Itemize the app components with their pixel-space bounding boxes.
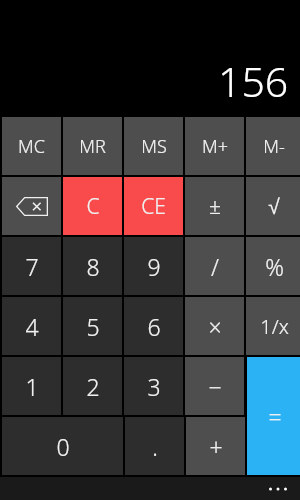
staticText: / bbox=[211, 251, 219, 282]
staticText: × bbox=[208, 311, 222, 342]
button[interactable]: 1 bbox=[2, 357, 61, 415]
button[interactable]: / bbox=[185, 237, 244, 295]
button[interactable]: + bbox=[186, 417, 245, 475]
staticText: 8 bbox=[86, 251, 100, 282]
button[interactable]: 2 bbox=[63, 357, 122, 415]
staticText: MS bbox=[141, 134, 167, 159]
button[interactable]: − bbox=[185, 357, 244, 415]
staticText: . bbox=[152, 431, 158, 462]
staticText: 3 bbox=[147, 371, 161, 402]
button[interactable]: More options bbox=[0, 477, 300, 500]
staticText: % bbox=[265, 251, 284, 282]
staticText: 0 bbox=[56, 431, 70, 462]
staticText: MC bbox=[18, 134, 45, 159]
button[interactable]: MR bbox=[63, 117, 122, 175]
button[interactable]: M+ bbox=[185, 117, 244, 175]
staticText: 6 bbox=[147, 311, 161, 342]
button[interactable]: MS bbox=[124, 117, 183, 175]
button[interactable]: 4 bbox=[2, 297, 61, 355]
button[interactable]: Backspace bbox=[2, 177, 61, 235]
button[interactable]: 1/x bbox=[246, 297, 300, 355]
staticText: = bbox=[268, 401, 282, 432]
button[interactable]: × bbox=[185, 297, 244, 355]
button[interactable]: 5 bbox=[63, 297, 122, 355]
button[interactable]: ± bbox=[185, 177, 244, 235]
staticText: 9 bbox=[147, 251, 161, 282]
button[interactable]: = bbox=[247, 357, 300, 475]
staticText: 5 bbox=[86, 311, 100, 342]
staticText: 2 bbox=[86, 371, 100, 402]
button[interactable]: √ bbox=[246, 177, 300, 235]
staticText: √ bbox=[268, 195, 280, 218]
button[interactable]: C bbox=[63, 177, 122, 235]
button[interactable]: M- bbox=[246, 117, 300, 175]
button[interactable]: 3 bbox=[124, 357, 183, 415]
button[interactable]: 0 bbox=[2, 417, 123, 475]
staticText: 4 bbox=[25, 311, 39, 342]
button[interactable]: . bbox=[125, 417, 184, 475]
staticText: 1/x bbox=[260, 313, 289, 340]
staticText: 7 bbox=[25, 251, 39, 282]
button[interactable]: MC bbox=[2, 117, 61, 175]
staticText: 1 bbox=[25, 371, 39, 402]
button[interactable]: % bbox=[246, 237, 300, 295]
button[interactable]: 6 bbox=[124, 297, 183, 355]
staticText: ± bbox=[209, 192, 221, 221]
staticText: M+ bbox=[202, 134, 228, 159]
staticText: C bbox=[86, 192, 100, 221]
button[interactable]: 7 bbox=[2, 237, 61, 295]
button[interactable]: 9 bbox=[124, 237, 183, 295]
staticText: CE bbox=[141, 192, 166, 221]
button[interactable]: CE bbox=[124, 177, 183, 235]
button[interactable]: 8 bbox=[63, 237, 122, 295]
staticText: M- bbox=[263, 134, 285, 159]
staticText: − bbox=[208, 371, 222, 402]
staticText: MR bbox=[79, 134, 106, 159]
staticText: + bbox=[209, 431, 223, 462]
staticText: 156 bbox=[218, 53, 289, 109]
